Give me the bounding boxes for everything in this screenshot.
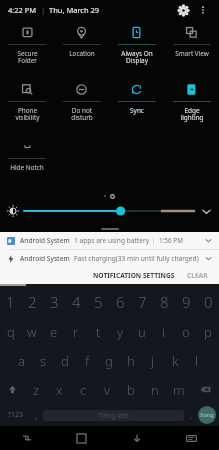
button[interactable]: t [87,317,109,346]
button[interactable]: f [76,346,98,375]
staticText: ' [60,295,61,302]
button[interactable]: Xong [198,406,216,424]
button[interactable]: a [10,346,32,375]
button[interactable]: 3 [43,287,65,317]
button[interactable]: b [119,375,143,404]
button[interactable]: u [131,317,153,346]
button[interactable]: c [71,375,95,404]
staticText: ' [170,295,171,302]
staticText: Do not disturb [71,106,93,122]
staticText: Location [69,49,95,58]
button[interactable]: Comma [29,404,43,426]
button[interactable]: l [186,346,208,375]
staticText: p [204,323,212,341]
button[interactable]: Smart View [164,20,219,77]
button[interactable]: p [197,317,219,346]
button[interactable]: 9 [175,287,197,317]
button[interactable]: Back [109,426,164,450]
button[interactable]: Edge lighting [164,77,219,134]
button[interactable]: 4 [65,287,87,317]
button[interactable]: Sync [109,77,164,134]
button[interactable]: k [164,346,186,375]
button[interactable]: Android System [0,250,219,267]
staticText: a [18,352,25,370]
button[interactable]: Expand brightness settings [199,204,213,218]
button[interactable]: m [167,375,191,404]
button[interactable]: Secure Folder [0,20,54,77]
staticText: f [85,352,90,370]
button[interactable]: Hide Notch [0,134,54,191]
staticText: u [138,323,146,341]
staticText: , [35,409,38,421]
button[interactable]: h [120,346,142,375]
button[interactable]: NOTIFICATION SETTINGS [90,269,178,282]
staticText: e [50,323,58,341]
staticText: 1 [6,292,15,312]
button[interactable]: Always On Display [109,20,164,77]
staticText: 4 [72,292,81,312]
button[interactable]: 8 [153,287,175,317]
staticText: Secure Folder [17,49,38,65]
button[interactable]: e [43,317,65,346]
button[interactable]: 1 [0,287,21,317]
button[interactable]: Switch keyboard [164,426,219,450]
button[interactable] [24,204,195,218]
staticText: c [80,381,87,399]
staticText: Sync [130,106,144,115]
button[interactable]: g [98,346,120,375]
button[interactable]: o [175,317,197,346]
button[interactable]: Brightness [6,204,20,218]
staticText: m [173,381,185,399]
staticText: 9 [182,292,191,312]
staticText: k [172,352,179,370]
button[interactable]: z [25,375,48,404]
button[interactable]: Recents [0,426,54,450]
staticText: j [151,352,155,370]
button[interactable]: Shift [0,375,25,404]
button[interactable]: d [54,346,76,375]
button[interactable]: 7 [131,287,153,317]
button[interactable]: More options [195,2,211,18]
staticText: Android System [20,236,70,245]
staticText: d [61,352,69,370]
button[interactable]: Settings [173,0,193,20]
button[interactable]: j [142,346,164,375]
button[interactable]: Android System [0,232,219,249]
staticText: b [127,381,135,399]
staticText: Tiếng Việt [98,411,129,420]
button[interactable]: r [65,317,87,346]
button[interactable]: 0 [197,287,219,317]
button[interactable]: x [48,375,71,404]
staticText: | [37,5,49,15]
button[interactable]: Do not disturb [54,77,109,134]
staticText: v [104,381,111,399]
staticText: h [127,352,135,370]
button[interactable]: q [0,317,21,346]
button[interactable]: Tiếng Việt [43,410,184,421]
staticText: Hide Notch [10,163,44,172]
staticText: i [162,323,166,341]
staticText: Edge lighting [180,106,204,122]
staticText: g [105,352,113,370]
button[interactable]: 5 [87,287,109,317]
button[interactable]: ?123 [3,404,29,426]
button[interactable]: s [32,346,54,375]
button[interactable]: Home [54,426,109,450]
button[interactable]: w [21,317,43,346]
staticText: . [190,409,193,421]
button[interactable]: 2 [21,287,43,317]
button[interactable]: Location [54,20,109,77]
button[interactable]: Phone visibility [0,77,54,134]
staticText: ' [104,295,105,302]
button[interactable]: Backspace [191,375,219,404]
button[interactable]: v [95,375,119,404]
button[interactable]: i [153,317,175,346]
button[interactable]: n [143,375,167,404]
button[interactable]: y [109,317,131,346]
staticText: Xong [200,411,214,419]
staticText: Always On Display [121,49,153,65]
button[interactable]: CLEAR [184,269,211,282]
staticText: n [151,381,159,399]
button[interactable]: 6 [109,287,131,317]
